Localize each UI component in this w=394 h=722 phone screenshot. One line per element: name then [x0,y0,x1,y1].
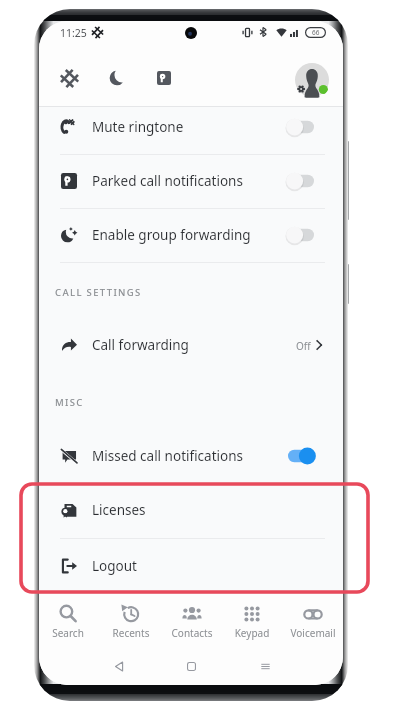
staticText: 11:25 [60,26,87,40]
button[interactable]: Contacts [162,602,222,644]
button[interactable]: Parked call notifications [39,154,343,208]
button[interactable]: Account [293,61,331,99]
button[interactable]: Voicemail [283,602,343,644]
staticText: MISC [55,396,84,409]
button[interactable]: Back [103,650,135,682]
staticText: Search [39,626,98,640]
button[interactable]: Enable group forwarding [39,208,343,262]
button[interactable]: Search [39,602,98,644]
button[interactable]: Recent apps [249,650,281,682]
staticText: Mute ringtone [92,118,184,136]
staticText: 66 [312,28,320,37]
staticText: Logout [92,557,137,575]
button[interactable]: Call forwarding [39,318,343,372]
staticText: Call forwarding [92,336,189,354]
staticText: Parked call notifications [92,172,243,190]
staticText: Enable group forwarding [92,226,251,244]
button[interactable]: Keypad [222,602,282,644]
button[interactable]: Parked calls [147,61,181,95]
staticText: Off [296,339,311,353]
staticText: Keypad [222,626,282,640]
button[interactable]: Do not disturb [100,61,134,95]
button[interactable]: Missed call notifications [39,429,343,483]
staticText: Contacts [162,626,222,640]
button[interactable]: Recents [101,602,161,644]
button[interactable]: Network [52,61,86,95]
staticText: Licenses [92,501,146,519]
button[interactable]: Mute ringtone [39,100,343,154]
button[interactable]: Licenses [39,483,343,537]
staticText: Recents [101,626,161,640]
staticText: Missed call notifications [92,447,243,465]
staticText: CALL SETTINGS [55,286,142,299]
staticText: Voicemail [283,626,343,640]
button[interactable]: Home [175,650,207,682]
button[interactable]: Logout [39,539,343,593]
